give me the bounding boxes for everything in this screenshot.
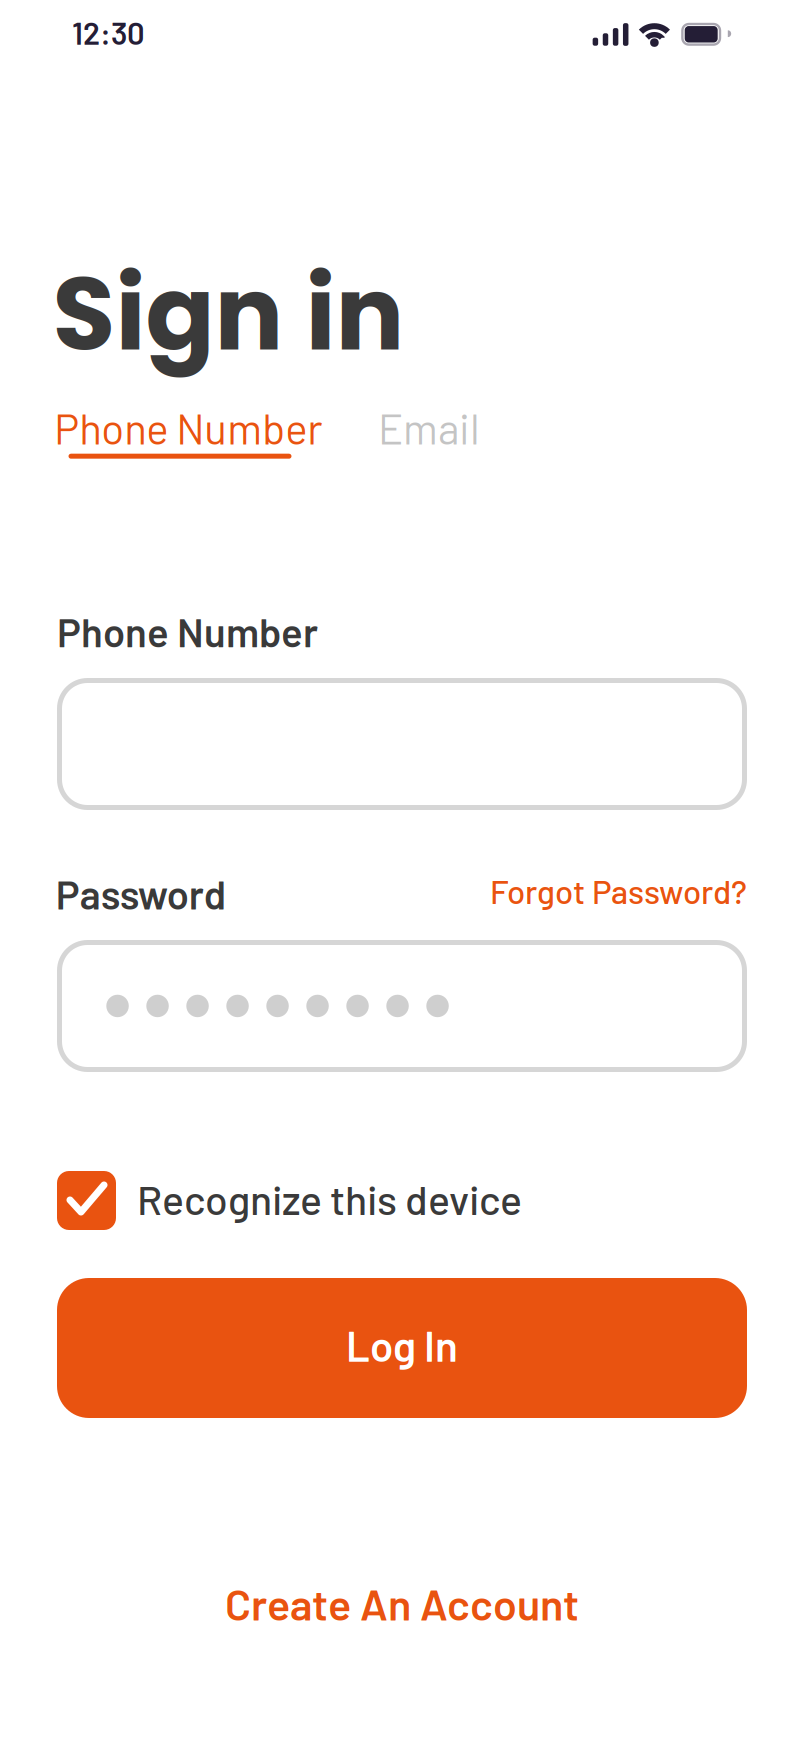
button[interactable]: Forgot Password?: [490, 871, 747, 910]
staticText: Create An Account: [225, 1577, 579, 1629]
staticText: Forgot Password?: [490, 871, 747, 910]
staticText: Phone Number: [57, 607, 318, 655]
button[interactable]: Create An Account: [225, 1577, 579, 1629]
staticText: Email: [378, 403, 480, 453]
button[interactable]: Phone Number: [54, 403, 322, 453]
staticText: Phone Number: [54, 403, 322, 453]
button[interactable]: Recognize this device: [57, 1171, 522, 1230]
staticText: Log In: [346, 1320, 458, 1370]
button[interactable]: Email: [378, 403, 480, 453]
staticText: Sign in: [52, 242, 404, 385]
staticText: 12:30: [72, 14, 145, 51]
staticText: Password: [56, 869, 226, 917]
staticText: Recognize this device: [137, 1174, 522, 1223]
button[interactable]: Log In: [57, 1278, 747, 1418]
